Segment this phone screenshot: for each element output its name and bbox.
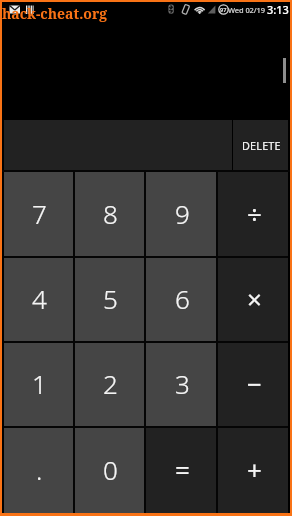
button[interactable]: 5: [75, 258, 144, 341]
staticText: 9: [175, 196, 190, 231]
button[interactable]: 1: [4, 343, 73, 426]
button[interactable]: 8: [75, 172, 144, 256]
staticText: ÷: [247, 196, 262, 231]
staticText: hack-cheat.org: [2, 4, 108, 23]
button[interactable]: 2: [75, 343, 144, 426]
staticText: =: [175, 452, 190, 487]
staticText: 2: [103, 366, 118, 401]
staticText: −: [247, 366, 262, 401]
button[interactable]: 9: [146, 172, 216, 256]
staticText: .: [36, 452, 43, 487]
staticText: 6: [175, 281, 190, 316]
staticText: 97: [220, 6, 227, 14]
staticText: ×: [247, 281, 262, 316]
button[interactable]: −: [218, 343, 288, 426]
staticText: Wed 02/19: [228, 5, 265, 15]
staticText: 0: [103, 452, 118, 487]
button[interactable]: 7: [4, 172, 73, 256]
staticText: 4: [32, 281, 47, 316]
button[interactable]: +: [218, 428, 288, 513]
button[interactable]: 4: [4, 258, 73, 341]
staticText: DELETE: [242, 138, 281, 153]
staticText: 7: [32, 196, 47, 231]
staticText: 3:13: [267, 2, 289, 16]
staticText: 3: [175, 366, 190, 401]
button[interactable]: 0: [75, 428, 144, 513]
button[interactable]: 6: [146, 258, 216, 341]
button[interactable]: ×: [218, 258, 288, 341]
staticText: +: [247, 452, 262, 487]
button[interactable]: DELETE: [233, 120, 288, 170]
button[interactable]: ÷: [218, 172, 288, 256]
button[interactable]: .: [4, 428, 73, 513]
button[interactable]: 3: [146, 343, 216, 426]
button[interactable]: Calculator display: [2, 16, 290, 120]
staticText: 5: [103, 281, 118, 316]
staticText: 1: [32, 366, 47, 401]
button[interactable]: =: [146, 428, 216, 513]
staticText: 8: [103, 196, 118, 231]
